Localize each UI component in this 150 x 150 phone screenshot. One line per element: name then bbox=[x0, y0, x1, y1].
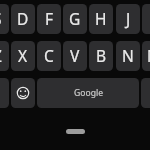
button[interactable]: H bbox=[89, 4, 113, 34]
button[interactable]: F bbox=[37, 4, 61, 34]
button[interactable]: Google bbox=[37, 78, 139, 108]
button[interactable]: B bbox=[89, 41, 113, 71]
staticText: J bbox=[126, 8, 131, 29]
button[interactable]: G bbox=[63, 4, 87, 34]
staticText: V bbox=[70, 45, 80, 66]
button[interactable]: Emoji bbox=[11, 78, 35, 108]
staticText: M bbox=[147, 45, 150, 66]
button[interactable]: J bbox=[116, 4, 140, 34]
button[interactable]: N bbox=[116, 41, 140, 71]
staticText: G bbox=[69, 8, 81, 29]
button[interactable]: Z bbox=[0, 41, 9, 71]
staticText: N bbox=[122, 45, 134, 66]
staticText: Z bbox=[0, 45, 2, 66]
button[interactable]: M bbox=[142, 41, 150, 71]
button[interactable] bbox=[0, 78, 9, 108]
button[interactable]: D bbox=[11, 4, 35, 34]
button[interactable]: V bbox=[63, 41, 87, 71]
staticText: Google bbox=[74, 87, 104, 99]
button[interactable]: C bbox=[37, 41, 61, 71]
button[interactable]: S bbox=[0, 4, 9, 34]
button[interactable]: X bbox=[11, 41, 35, 71]
staticText: H bbox=[95, 8, 107, 29]
staticText: B bbox=[96, 45, 107, 66]
staticText: D bbox=[17, 8, 29, 29]
button[interactable]: K bbox=[142, 4, 150, 34]
button[interactable] bbox=[141, 78, 150, 108]
staticText: C bbox=[44, 45, 54, 66]
staticText: S bbox=[0, 8, 2, 29]
staticText: X bbox=[18, 45, 28, 66]
staticText: F bbox=[45, 8, 54, 29]
